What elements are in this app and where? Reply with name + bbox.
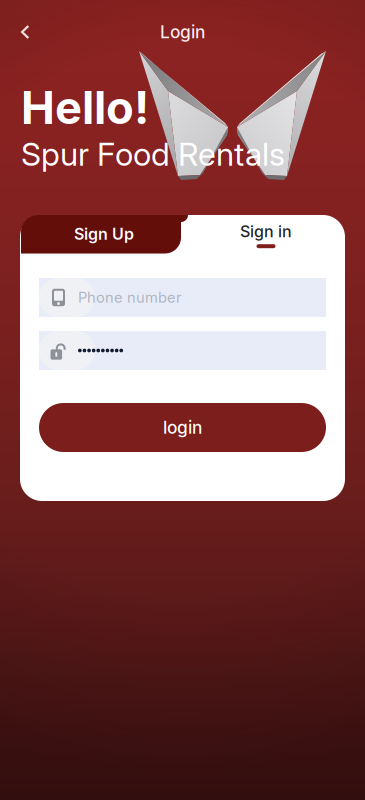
button[interactable]: Back bbox=[5, 12, 45, 52]
staticText: Hello! bbox=[21, 80, 149, 135]
button[interactable]: Sign Up bbox=[21, 215, 187, 253]
staticText: Sign Up bbox=[74, 224, 134, 244]
staticText: Login bbox=[160, 21, 205, 42]
staticText: login bbox=[163, 417, 202, 438]
staticText: Sign in bbox=[240, 222, 292, 241]
button[interactable]: Sign in bbox=[196, 215, 336, 255]
button[interactable]: login bbox=[39, 403, 326, 452]
staticText: Spur Food Rentals bbox=[21, 135, 285, 174]
staticText: Phone number bbox=[78, 289, 182, 306]
